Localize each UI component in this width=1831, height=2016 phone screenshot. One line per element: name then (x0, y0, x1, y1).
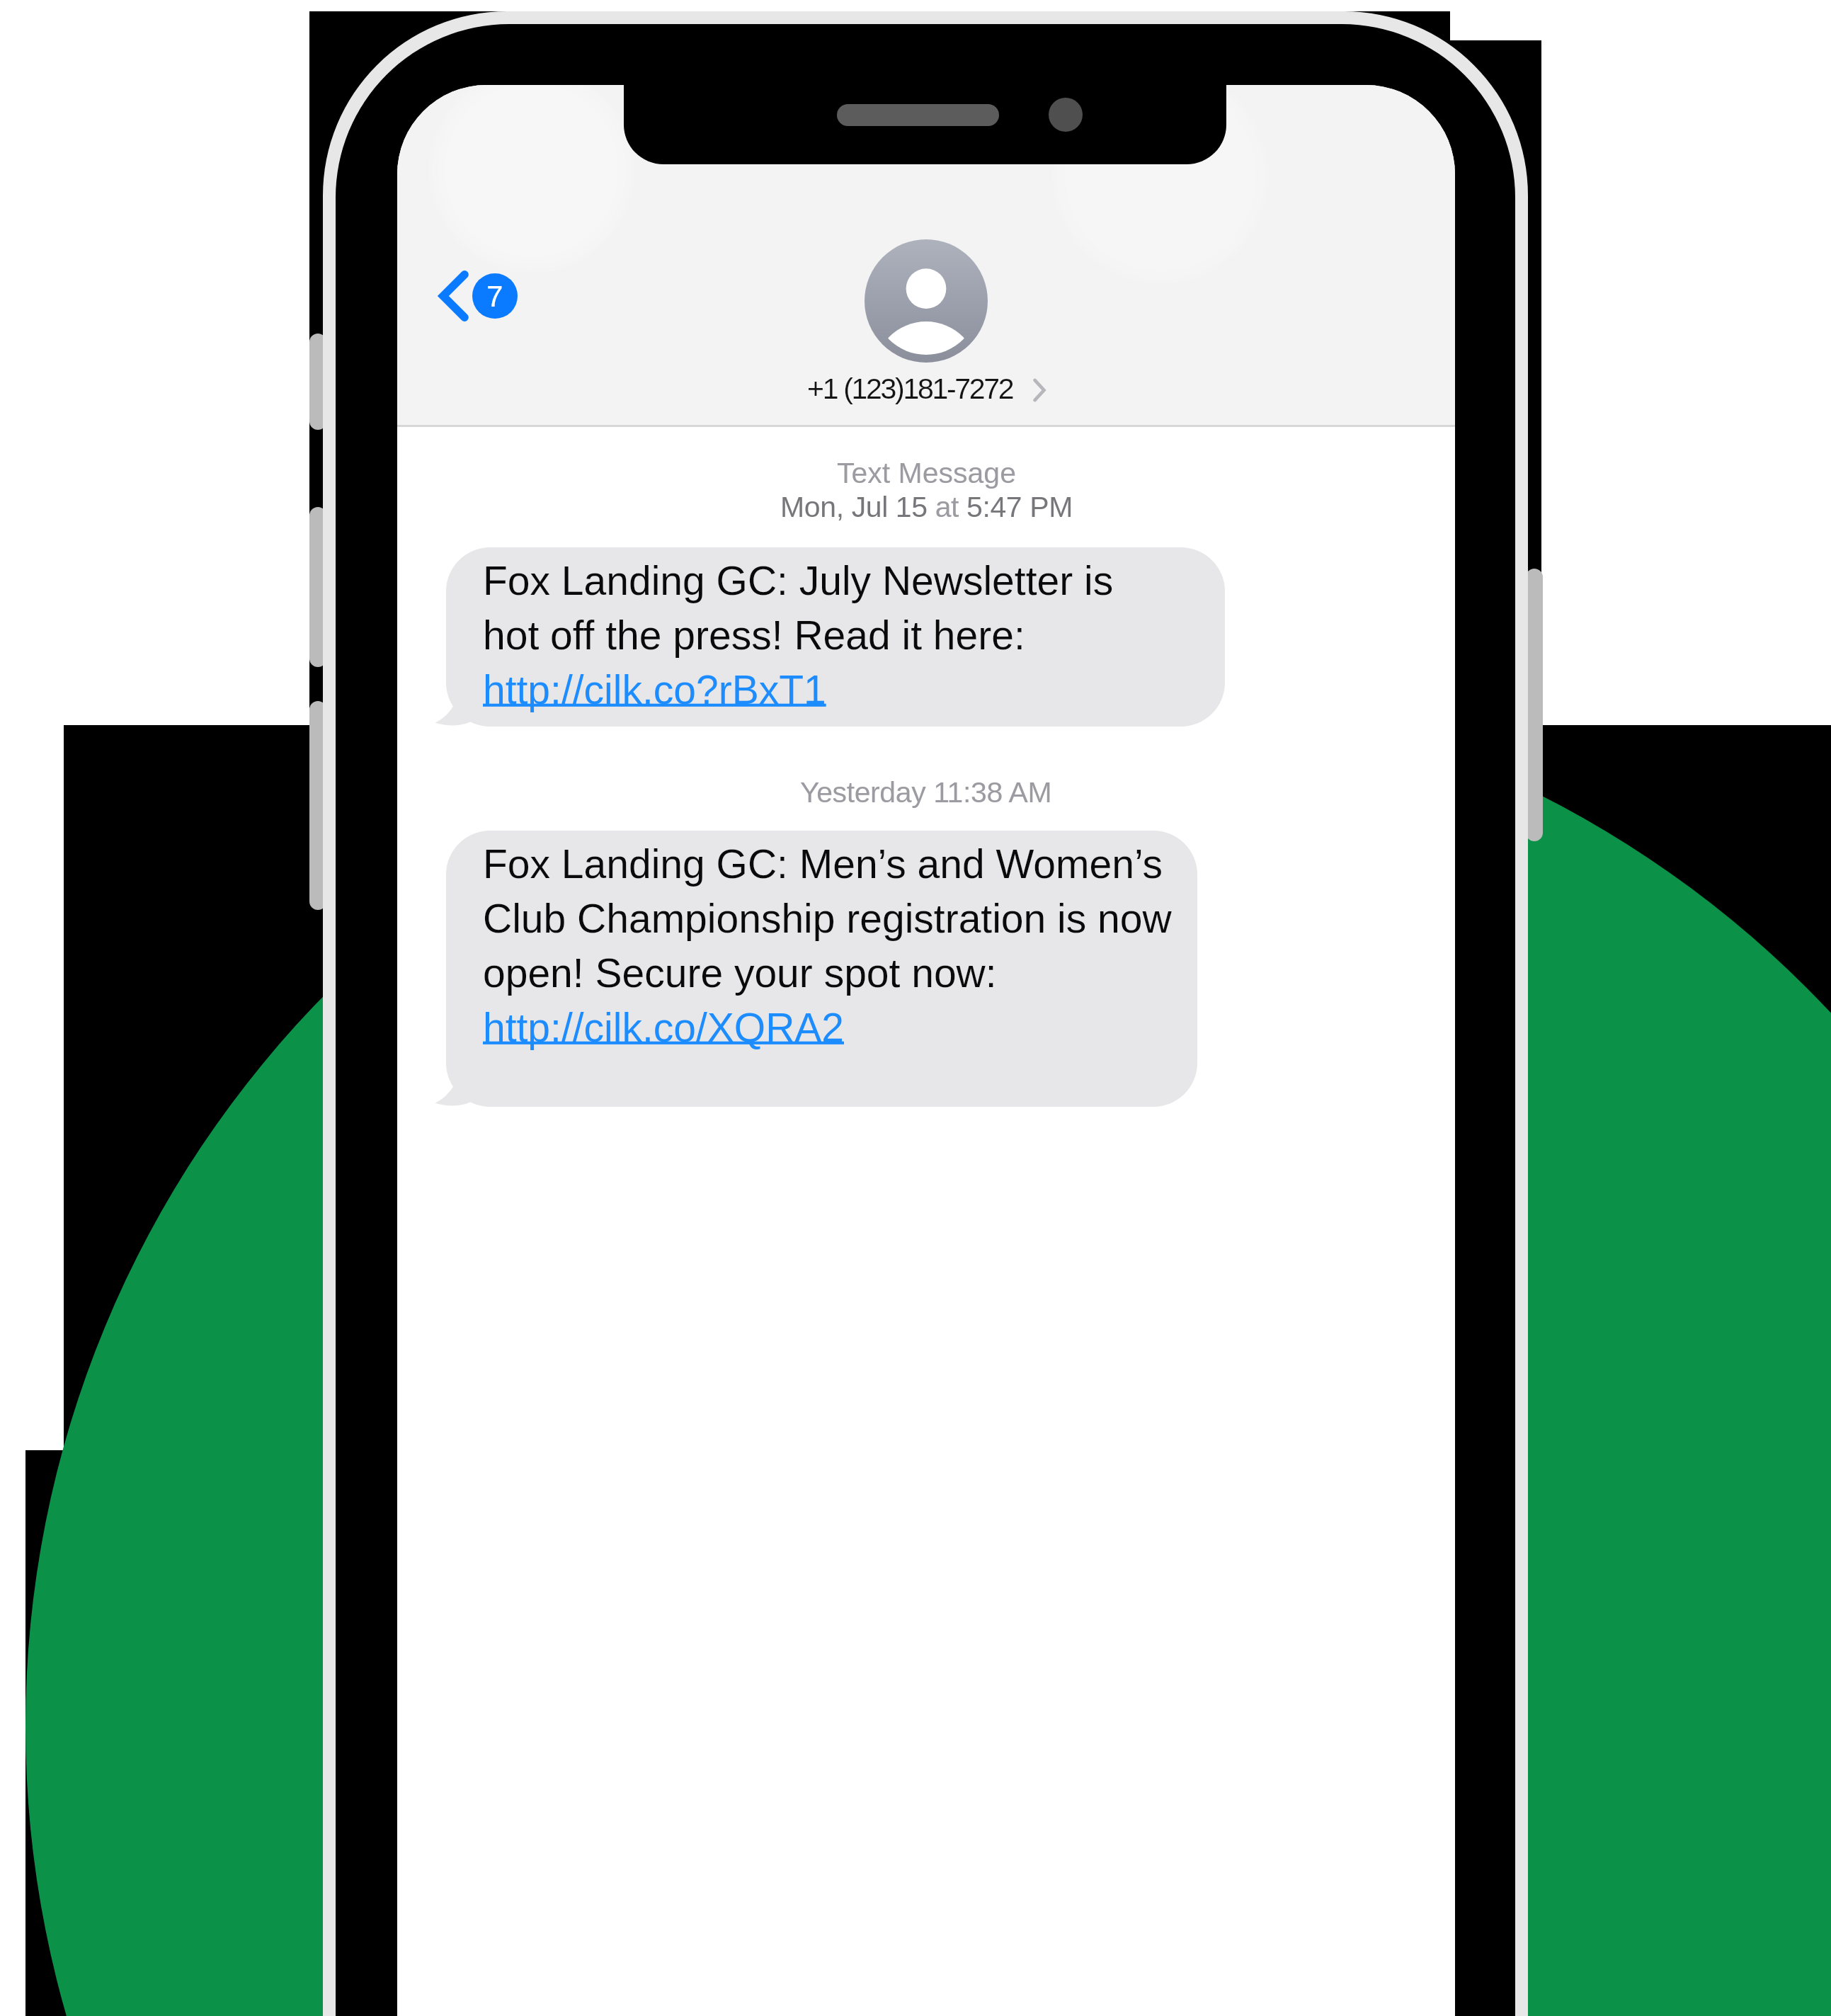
staticText: Yesterday 11:38 AM (800, 776, 1052, 809)
button[interactable]: Back, 7 unread messages (439, 270, 518, 322)
button[interactable]: Contact avatar (865, 239, 988, 363)
button[interactable]: +1 (123)181-7272 (397, 372, 1455, 405)
staticText: 7 (486, 280, 503, 313)
button[interactable]: Fox Landing GC: July Newsletter is hot o… (446, 547, 1225, 727)
staticText: Text Message (837, 457, 1016, 489)
button[interactable]: Fox Landing GC: Men’s and Women’s Club C… (446, 831, 1197, 1107)
staticText: Mon, Jul 15 at 5:47 PM (780, 491, 1073, 523)
staticText: Fox Landing GC: July Newsletter is hot o… (483, 558, 1114, 712)
staticText: Fox Landing GC: Men’s and Women’s Club C… (483, 841, 1172, 1050)
staticText: +1 (123)181-7272 (807, 372, 1013, 405)
